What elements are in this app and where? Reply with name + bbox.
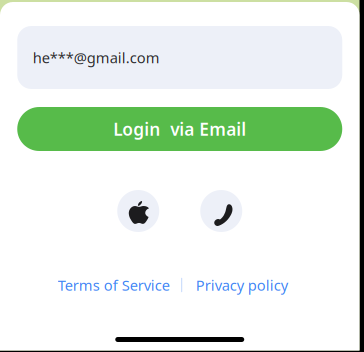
staticText: Terms of Service	[58, 275, 170, 295]
button[interactable]: Login via Email	[17, 107, 342, 151]
button[interactable]: Continue with Apple	[117, 190, 159, 232]
staticText: he***@gmail.com	[33, 48, 160, 67]
staticText: Login via Email	[113, 117, 246, 140]
button[interactable]: Privacy policy	[182, 273, 297, 297]
staticText: Privacy policy	[196, 275, 288, 295]
button[interactable]: Terms of Service	[49, 273, 181, 297]
button[interactable]: Continue with phone number	[200, 190, 242, 232]
